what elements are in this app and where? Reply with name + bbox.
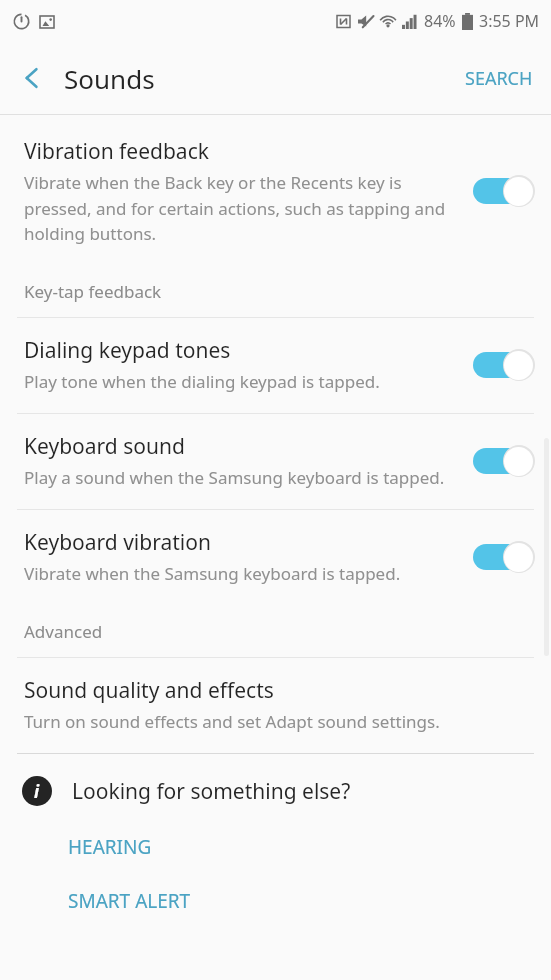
button[interactable]: Dialing keypad tones: [0, 318, 551, 413]
button[interactable]: Back: [8, 54, 56, 102]
staticText: Play tone when the dialing keypad is tap…: [24, 370, 380, 393]
staticText: Vibrate when the Back key or the Recents…: [24, 171, 459, 245]
button[interactable]: Keyboard sound: [0, 414, 551, 509]
staticText: Dialing keypad tones: [24, 336, 231, 365]
staticText: Advanced: [24, 620, 103, 643]
staticText: Turn on sound effects and set Adapt soun…: [24, 710, 440, 733]
button[interactable]: HEARING: [0, 828, 551, 866]
button[interactable]: SEARCH: [447, 50, 551, 107]
staticText: Play a sound when the Samsung keyboard i…: [24, 466, 445, 489]
button[interactable]: Toggle on: [473, 540, 535, 574]
staticText: SEARCH: [465, 66, 533, 91]
button[interactable]: Toggle on: [473, 444, 535, 478]
staticText: Sound quality and effects: [24, 676, 274, 705]
button[interactable]: Sound quality and effects: [0, 658, 551, 753]
staticText: Key-tap feedback: [24, 280, 162, 303]
staticText: Vibration feedback: [24, 137, 209, 166]
button[interactable]: Vibration feedback: [0, 115, 551, 265]
button[interactable]: Toggle on: [473, 174, 535, 208]
staticText: 84%: [424, 10, 456, 32]
button[interactable]: Keyboard vibration: [0, 510, 551, 605]
staticText: 3:55 PM: [479, 10, 540, 32]
button[interactable]: Toggle on: [473, 348, 535, 382]
staticText: Vibrate when the Samsung keyboard is tap…: [24, 562, 401, 585]
staticText: Keyboard vibration: [24, 528, 211, 557]
staticText: Looking for something else?: [72, 777, 351, 806]
staticText: i: [34, 780, 40, 803]
staticText: SMART ALERT: [68, 888, 191, 914]
staticText: Sounds: [64, 61, 155, 96]
staticText: Keyboard sound: [24, 432, 185, 461]
button[interactable]: SMART ALERT: [0, 882, 551, 920]
staticText: HEARING: [68, 834, 152, 860]
